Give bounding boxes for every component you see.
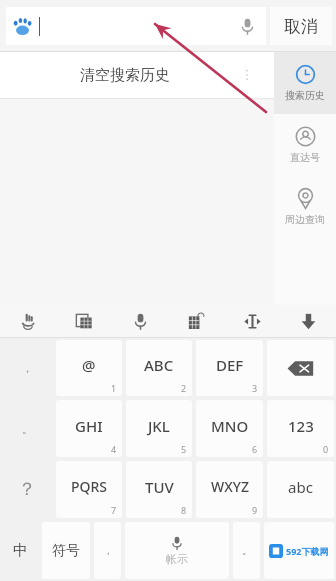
button[interactable]: abc [267,461,334,518]
button[interactable]: 123 [267,400,334,457]
staticText: 直达号 [290,151,320,164]
staticText: 。 [22,422,33,436]
button[interactable]: @ [56,340,122,396]
staticText: ， [103,544,113,557]
staticText: WXYZ [211,477,249,496]
button[interactable]: More options [236,64,258,86]
button[interactable]: MNO [196,400,263,457]
button[interactable]: WXYZ [196,461,263,518]
staticText: 。 [242,544,252,557]
button[interactable]: Voice input [112,305,168,337]
staticText: 清空搜索历史 [80,66,170,85]
staticText: 3 [252,382,258,394]
button[interactable]: TUV [126,461,192,518]
staticText: abc [288,477,313,497]
button[interactable]: 符号 [42,522,90,579]
button[interactable]: 直达号 [274,114,336,176]
button[interactable]: ？ [0,459,54,520]
staticText: 592下载网 [286,545,329,557]
staticText: 周边查询 [285,213,325,226]
staticText: 5 [181,443,187,455]
button[interactable]: 周边查询 [274,176,336,238]
staticText: GHI [75,416,103,436]
staticText: 123 [288,416,314,436]
button[interactable]: ， [94,522,121,579]
button[interactable]: Handwriting [0,305,56,337]
button[interactable]: ABC [126,340,192,396]
button[interactable]: Delete [267,340,334,396]
staticText: 搜索历史 [285,89,325,102]
button[interactable]: 取消 [270,7,332,45]
staticText: 帐示 [166,552,188,566]
button[interactable]: DEF [196,340,263,396]
button[interactable]: Voice search [235,14,259,38]
button[interactable]: Hide keyboard [280,305,336,337]
staticText: PQRS [71,477,108,496]
button[interactable]: Space and voice input [125,522,229,579]
button[interactable]: 。 [233,522,260,579]
button[interactable]: 中 [0,520,40,581]
staticText: 0 [323,443,329,455]
staticText: ， [22,361,33,375]
staticText: 8 [181,504,187,516]
staticText: DEF [216,355,244,375]
staticText: 9 [252,504,258,516]
staticText: 7 [111,504,117,516]
staticText: 4 [111,443,117,455]
staticText: 符号 [52,542,80,560]
button[interactable]: 清空搜索历史 [0,52,274,98]
staticText: TUV [145,477,174,497]
button[interactable]: JKL [126,400,192,457]
staticText: 2 [181,382,187,394]
button[interactable]: Keypad settings [168,305,224,337]
staticText: JKL [148,416,170,436]
button[interactable]: 592 download site [264,522,334,579]
button[interactable]: GHI [56,400,122,457]
staticText: 取消 [284,16,318,37]
button[interactable]: Resize keyboard [224,305,280,337]
staticText: ？ [18,478,36,501]
button[interactable]: PQRS [56,461,122,518]
staticText: 中 [13,541,28,560]
staticText: 1 [111,382,117,394]
staticText: @ [82,355,96,375]
staticText: ABC [144,355,174,375]
button[interactable]: 搜索历史 [274,52,336,114]
staticText: MNO [211,416,249,436]
staticText: 6 [252,443,258,455]
button[interactable]: Keyboard layout [56,305,112,337]
button[interactable]: Voice search [6,7,266,45]
